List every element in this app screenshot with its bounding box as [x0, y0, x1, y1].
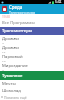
button[interactable]: Шоколад [0, 87, 64, 94]
staticText: 5:32 [55, 0, 62, 4]
staticText: Все Программы [2, 20, 35, 26]
staticText: Показать ещё [4, 95, 27, 100]
button[interactable]: App icon [0, 4, 64, 14]
staticText: Телепрограмма [9, 10, 36, 14]
staticText: Трансмиттеры [2, 28, 33, 34]
button[interactable]: Мироздание [0, 62, 64, 71]
staticText: Среда [9, 4, 23, 10]
staticText: Мироздание [2, 63, 28, 69]
button[interactable]: Мечты [0, 80, 64, 87]
staticText: Туманное [2, 73, 23, 79]
staticText: Мечты [2, 81, 16, 87]
button[interactable]: 19:30 [0, 14, 64, 27]
button[interactable]: Трансмиттеры [0, 27, 64, 35]
staticText: Парковый [2, 54, 23, 60]
button[interactable]: Парковый [0, 53, 64, 62]
button[interactable]: Туманное [0, 71, 64, 80]
staticText: 10 [2, 61, 6, 62]
staticText: Дрожжи [2, 36, 19, 42]
staticText: Шоколад [2, 88, 21, 94]
staticText: 19:30 [2, 15, 11, 19]
other: App icon [2, 6, 7, 12]
button[interactable]: Дрожжи [0, 44, 64, 53]
button[interactable]: Дрожжи [0, 35, 64, 44]
staticText: 15 [2, 52, 6, 53]
button[interactable]: Показать ещё [0, 94, 64, 100]
staticText: Дрожжи [2, 45, 19, 51]
